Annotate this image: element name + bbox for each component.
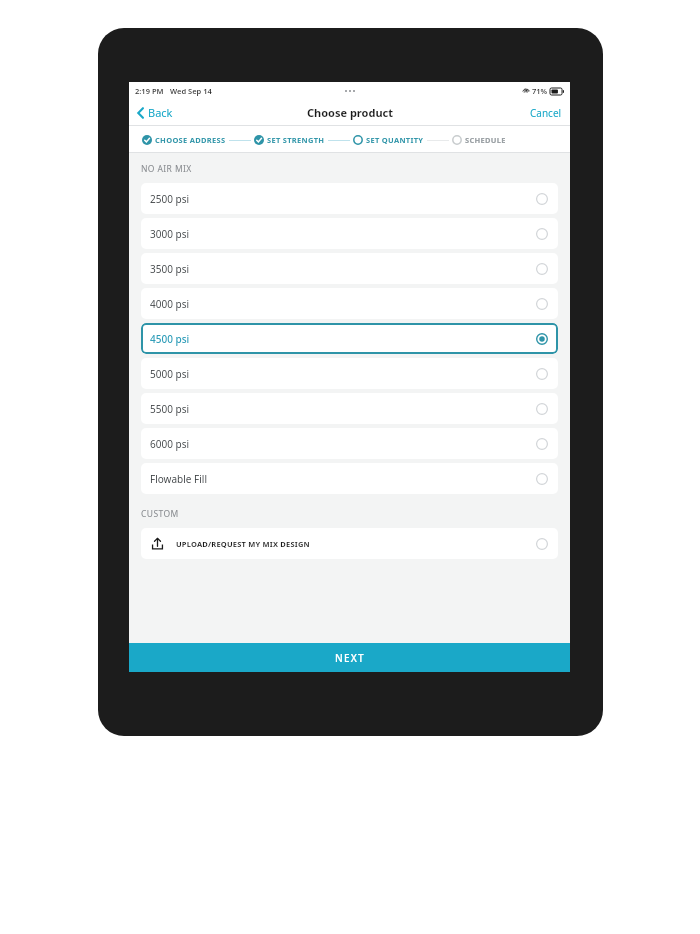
button[interactable]: Back [129,101,181,124]
button[interactable]: Cancel [522,101,570,125]
staticText: CUSTOM [141,508,179,520]
button[interactable]: 4000 psi [141,288,558,319]
button[interactable]: CHOOSE ADDRESS [139,132,229,148]
staticText: Flowable Fill [150,472,207,486]
button[interactable]: 6000 psi [141,428,558,459]
staticText: 3000 psi [150,227,189,241]
button[interactable]: Flowable Fill [141,463,558,494]
staticText: 71% [532,86,548,96]
button[interactable]: SET QUANTITY [350,132,427,148]
staticText: NEXT [335,651,365,665]
staticText: 3500 psi [150,262,189,276]
staticText: SET STRENGTH [267,135,325,145]
button[interactable]: UPLOAD/REQUEST MY MIX DESIGN [141,528,558,559]
button[interactable]: 5000 psi [141,358,558,389]
staticText: Back [148,105,173,120]
staticText: CHOOSE ADDRESS [155,135,226,145]
staticText: Wed Sep 14 [170,86,212,96]
button[interactable]: 2500 psi [141,183,558,214]
button[interactable]: 3000 psi [141,218,558,249]
button[interactable]: 4500 psi [141,323,558,354]
button[interactable]: SET STRENGTH [251,132,328,148]
staticText: 6000 psi [150,437,189,451]
staticText: SET QUANTITY [366,135,424,145]
staticText: 4000 psi [150,297,189,311]
staticText: 5000 psi [150,367,189,381]
staticText: UPLOAD/REQUEST MY MIX DESIGN [176,539,310,549]
staticText: SCHEDULE [465,135,506,145]
staticText: Cancel [530,106,562,120]
staticText: 5500 psi [150,402,189,416]
button[interactable]: 3500 psi [141,253,558,284]
button[interactable]: 5500 psi [141,393,558,424]
staticText: 4500 psi [150,332,190,346]
staticText: NO AIR MIX [141,163,192,175]
staticText: Choose product [307,105,393,120]
staticText: 2500 psi [150,192,189,206]
button[interactable]: SCHEDULE [449,132,509,148]
staticText: 2:19 PM [135,86,164,96]
button[interactable]: NEXT [129,643,570,672]
